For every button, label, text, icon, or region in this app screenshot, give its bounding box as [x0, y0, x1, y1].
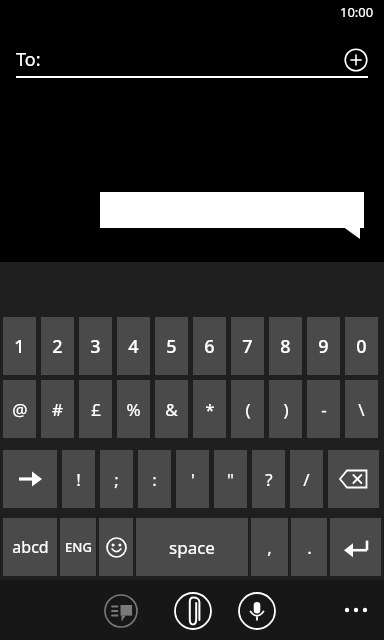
- button[interactable]: ENG: [60, 518, 96, 576]
- button[interactable]: Backspace: [328, 450, 379, 508]
- staticText: 5: [166, 334, 177, 359]
- button[interactable]: ?: [252, 450, 285, 508]
- button[interactable]: !: [62, 450, 95, 508]
- staticText: 0: [356, 334, 367, 359]
- staticText: (: [245, 398, 251, 421]
- staticText: ): [283, 398, 289, 421]
- button[interactable]: 2: [41, 317, 74, 375]
- staticText: -: [321, 398, 327, 421]
- button[interactable]: &: [155, 380, 188, 438]
- button[interactable]: 6: [193, 317, 226, 375]
- button[interactable]: *: [193, 380, 226, 438]
- button[interactable]: ): [269, 380, 302, 438]
- staticText: space: [169, 536, 215, 559]
- staticText: 9: [318, 334, 329, 359]
- button[interactable]: #: [41, 380, 74, 438]
- button[interactable]: /: [290, 450, 323, 508]
- button[interactable]: More options: [334, 588, 378, 632]
- button[interactable]: 8: [269, 317, 302, 375]
- button[interactable]: 7: [231, 317, 264, 375]
- button[interactable]: Tab: [3, 450, 57, 508]
- button[interactable]: (: [231, 380, 264, 438]
- staticText: abcd: [12, 536, 49, 558]
- button[interactable]: abcd: [3, 518, 57, 576]
- staticText: ENG: [65, 538, 92, 556]
- staticText: 1: [14, 334, 25, 359]
- staticText: ;: [114, 468, 119, 491]
- staticText: 8: [280, 334, 291, 359]
- staticText: £: [91, 398, 101, 421]
- button[interactable]: Messaging mode: [104, 594, 138, 628]
- staticText: .: [307, 536, 312, 559]
- button[interactable]: 4: [117, 317, 150, 375]
- button[interactable]: Voice message: [238, 592, 276, 630]
- staticText: To:: [16, 47, 41, 72]
- staticText: 7: [242, 334, 253, 359]
- button[interactable]: %: [117, 380, 150, 438]
- button[interactable]: Attach: [174, 592, 212, 630]
- button[interactable]: ": [214, 450, 247, 508]
- staticText: *: [205, 398, 215, 421]
- button[interactable]: 0: [345, 317, 378, 375]
- button[interactable]: \: [345, 380, 378, 438]
- button[interactable]: .: [291, 518, 327, 576]
- staticText: /: [303, 468, 310, 491]
- staticText: :: [152, 468, 157, 491]
- button[interactable]: 5: [155, 317, 188, 375]
- staticText: 3: [90, 334, 101, 359]
- button[interactable]: :: [138, 450, 171, 508]
- button[interactable]: 3: [79, 317, 112, 375]
- button[interactable]: ': [176, 450, 209, 508]
- button[interactable]: @: [3, 380, 36, 438]
- staticText: \: [358, 398, 365, 421]
- staticText: &: [165, 398, 178, 421]
- staticText: %: [126, 398, 141, 421]
- button[interactable]: Emoji: [99, 518, 133, 576]
- button[interactable]: 1: [3, 317, 36, 375]
- button[interactable]: space: [136, 518, 248, 576]
- staticText: #: [52, 398, 63, 421]
- staticText: @: [12, 398, 28, 421]
- button[interactable]: ;: [100, 450, 133, 508]
- staticText: 4: [128, 334, 139, 359]
- button[interactable]: Add contact: [344, 48, 368, 72]
- staticText: ": [227, 468, 234, 491]
- staticText: 10:00: [340, 3, 374, 21]
- staticText: ?: [265, 468, 273, 491]
- staticText: !: [76, 468, 81, 491]
- button[interactable]: -: [307, 380, 340, 438]
- staticText: ,: [267, 536, 272, 559]
- staticText: ': [191, 468, 195, 491]
- button[interactable]: £: [79, 380, 112, 438]
- button[interactable]: 9: [307, 317, 340, 375]
- staticText: 6: [204, 334, 215, 359]
- button[interactable]: Message bubble: [100, 192, 364, 240]
- button[interactable]: Enter: [330, 518, 381, 576]
- button[interactable]: ,: [251, 518, 288, 576]
- staticText: 2: [52, 334, 63, 359]
